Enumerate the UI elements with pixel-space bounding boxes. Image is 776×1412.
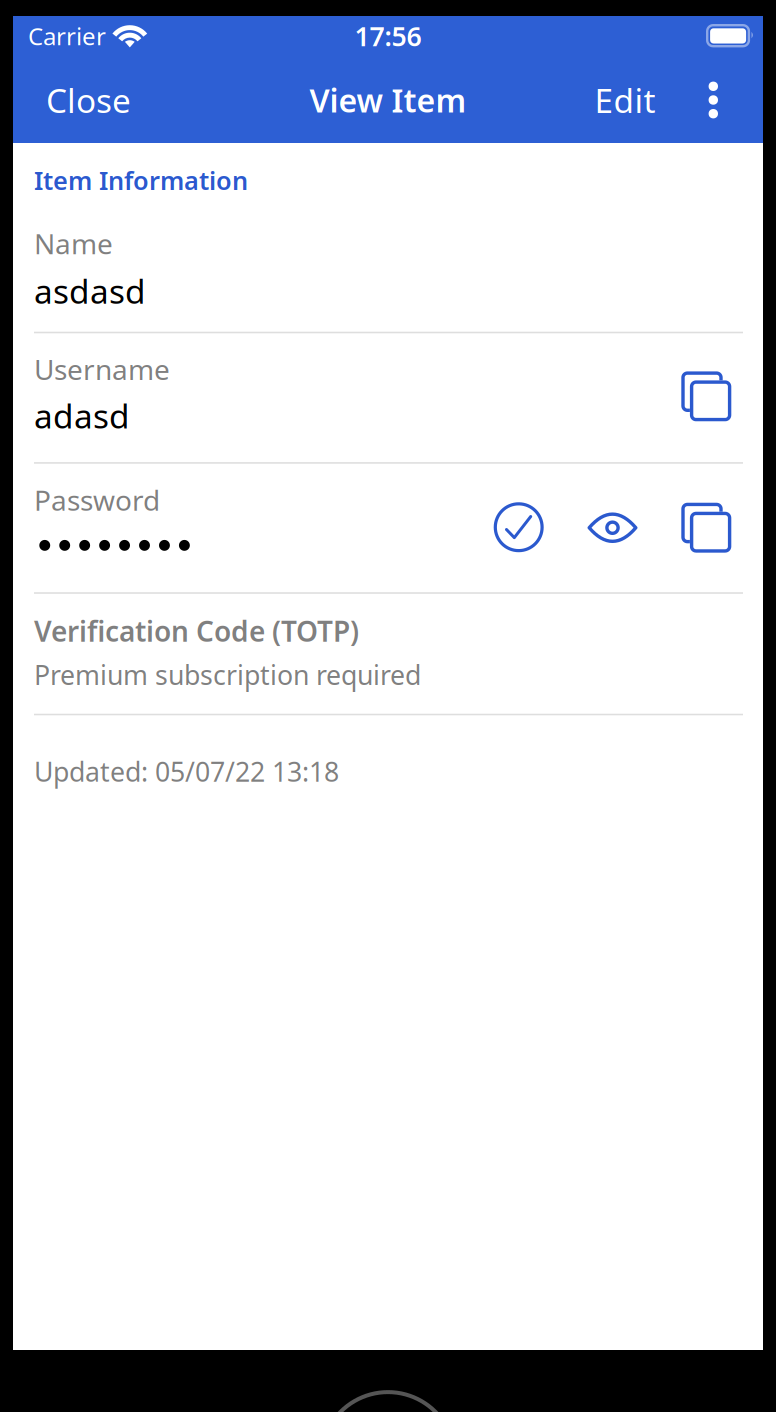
staticText: Premium subscription required — [34, 657, 421, 692]
staticText: Password — [34, 481, 160, 518]
button[interactable]: Show password — [587, 503, 637, 553]
staticText: Updated: 05/07/22 13:18 — [34, 754, 339, 789]
staticText: View Item — [309, 79, 466, 121]
staticText: Carrier — [28, 20, 106, 52]
staticText: Name — [34, 225, 113, 262]
staticText: Item Information — [34, 163, 248, 197]
button[interactable]: Copy password — [681, 503, 731, 553]
button[interactable]: Close — [30, 67, 147, 135]
staticText: 17:56 — [354, 18, 421, 54]
button[interactable]: Check password — [494, 502, 544, 552]
button[interactable]: Edit — [579, 67, 672, 135]
button[interactable]: More options — [690, 67, 746, 135]
staticText: Edit — [595, 78, 656, 122]
staticText: Verification Code (TOTP) — [34, 612, 359, 649]
staticText: asdasd — [34, 269, 146, 313]
staticText: Username — [34, 350, 170, 388]
staticText: Close — [46, 78, 131, 122]
button[interactable]: Copy username — [681, 371, 731, 421]
staticText: adasd — [34, 393, 130, 438]
